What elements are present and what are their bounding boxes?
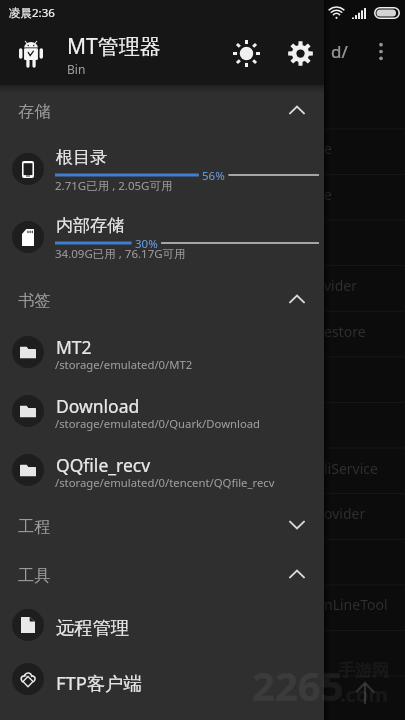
staticText: vider <box>324 276 358 295</box>
button[interactable]: FTP客户端 <box>0 652 324 706</box>
button[interactable]: Download <box>0 382 324 440</box>
button[interactable]: 工程 <box>0 501 324 549</box>
staticText: /storage/emulated/0/tencent/QQfile_recv <box>55 475 275 490</box>
staticText: d/ <box>331 40 348 63</box>
staticText: e <box>324 139 332 158</box>
staticText: .com <box>340 681 388 708</box>
staticText: 2.71G已用 , 2.05G可用 <box>55 178 173 194</box>
staticText: QQfile_recv <box>56 453 151 477</box>
staticText: e <box>324 185 332 204</box>
staticText: Bin <box>67 61 86 77</box>
staticText: 56% <box>202 168 225 184</box>
button[interactable]: 工具 <box>0 550 324 598</box>
button[interactable]: Scroll to top <box>348 676 382 710</box>
button[interactable]: 书签 <box>0 275 324 323</box>
staticText: MT管理器 <box>67 32 161 61</box>
staticText: 远程管理 <box>56 616 130 639</box>
staticText: /storage/emulated/0/Quark/Download <box>55 416 261 431</box>
staticText: nLineTool <box>324 595 388 614</box>
staticText: ovider <box>324 504 366 523</box>
button[interactable]: More options <box>363 33 399 69</box>
staticText: 根目录 <box>56 147 107 168</box>
button[interactable]: 存储 <box>0 86 324 134</box>
staticText: 2265 <box>252 658 344 712</box>
staticText: 工程 <box>18 516 51 536</box>
staticText: 凌晨2:36 <box>9 5 55 21</box>
staticText: 30% <box>135 236 158 252</box>
staticText: estore <box>324 322 366 341</box>
staticText: 书签 <box>18 290 51 310</box>
staticText: 工具 <box>18 565 51 585</box>
button[interactable]: Brightness <box>225 32 267 74</box>
button[interactable]: Settings <box>279 32 321 74</box>
button[interactable]: 远程管理 <box>0 598 324 652</box>
button[interactable]: MT2 <box>0 323 324 381</box>
staticText: FTP客户端 <box>56 670 142 695</box>
button[interactable]: App icon <box>12 32 50 70</box>
staticText: 内部存储 <box>56 215 124 236</box>
staticText: 34.09G已用 , 76.17G可用 <box>55 246 186 262</box>
staticText: Download <box>56 394 140 418</box>
button[interactable]: QQfile_recv <box>0 441 324 499</box>
staticText: /storage/emulated/0/MT2 <box>55 357 193 372</box>
button[interactable]: 内部存储 <box>0 204 324 270</box>
button[interactable]: 根目录 <box>0 136 324 202</box>
staticText: 手游网 <box>338 660 389 681</box>
staticText: liService <box>324 459 378 478</box>
staticText: MT2 <box>56 335 92 359</box>
staticText: 存储 <box>18 101 51 121</box>
